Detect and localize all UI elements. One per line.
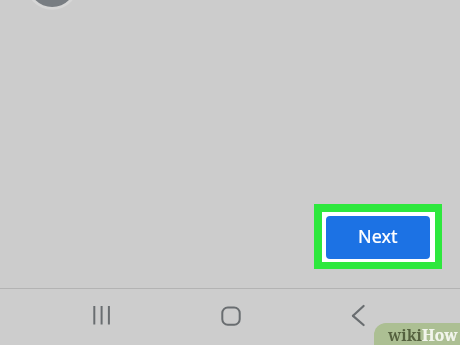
button[interactable]: Home <box>214 300 246 332</box>
button[interactable]: Recent apps <box>86 300 118 332</box>
staticText: wikiHow <box>388 324 458 345</box>
staticText: Next <box>358 224 398 249</box>
button[interactable]: Back <box>344 300 376 332</box>
button[interactable]: Next <box>326 216 430 259</box>
